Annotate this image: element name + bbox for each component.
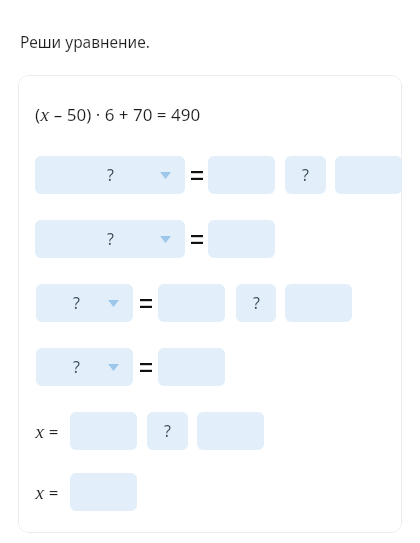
staticText: ?: [253, 292, 260, 314]
staticText: ?: [164, 420, 171, 442]
button[interactable]: ?: [147, 412, 188, 450]
staticText: x =: [35, 420, 59, 443]
staticText: ?: [73, 356, 80, 378]
button[interactable]: Select operation: [35, 220, 185, 258]
button[interactable]: Select operation: [36, 348, 133, 386]
staticText: ?: [73, 292, 80, 314]
button[interactable]: Select operation: [36, 284, 133, 322]
staticText: x =: [35, 481, 59, 504]
button[interactable]: Select operation: [35, 156, 185, 194]
staticText: Реши уравнение.: [20, 31, 150, 52]
staticText: ?: [302, 164, 309, 186]
staticText: ?: [107, 228, 114, 250]
button[interactable]: ?: [285, 156, 326, 194]
staticText: ?: [107, 164, 114, 186]
button[interactable]: ?: [236, 284, 276, 322]
staticText: (x – 50) · 6 + 70 = 490: [35, 103, 201, 126]
